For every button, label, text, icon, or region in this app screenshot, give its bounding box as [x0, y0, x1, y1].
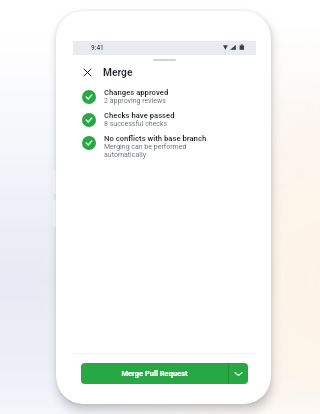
staticText: Merging can be performed automatically [104, 143, 187, 159]
button[interactable]: Checks have passed [73, 109, 256, 132]
staticText: Checks have passed [104, 111, 175, 120]
staticText: Changes approved [104, 88, 169, 97]
staticText: Merge Pull Request [121, 369, 188, 378]
staticText: Merge [103, 67, 133, 79]
button[interactable]: More merge options [229, 363, 248, 384]
staticText: 9:41 [91, 44, 104, 52]
button[interactable]: No conflicts with base branch [73, 132, 256, 163]
button[interactable]: Changes approved [73, 86, 256, 109]
staticText: 8 successful checks [104, 120, 168, 128]
button[interactable]: Merge Pull Request [81, 363, 228, 384]
staticText: 2 approving reviews [104, 97, 166, 105]
button[interactable]: Close [81, 66, 94, 79]
staticText: No conflicts with base branch [104, 134, 207, 143]
